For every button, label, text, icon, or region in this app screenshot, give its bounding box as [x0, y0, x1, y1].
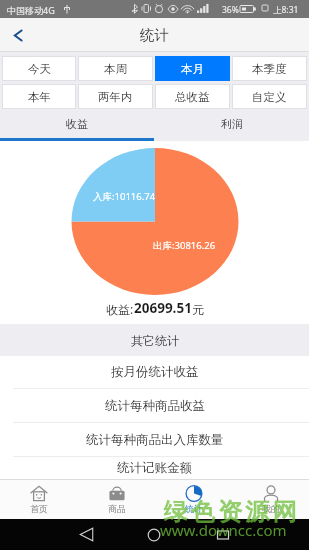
button[interactable]: Back: [69, 522, 103, 547]
staticText: www.downcc.com: [160, 520, 287, 540]
staticText: 36%: [222, 4, 239, 16]
staticText: 自定义: [252, 90, 287, 104]
staticText: 利润: [221, 117, 243, 131]
button[interactable]: 利润: [154, 110, 309, 138]
button[interactable]: 统计: [155, 480, 232, 519]
staticText: 本季度: [252, 62, 287, 76]
staticText: 两年内: [98, 90, 133, 104]
button[interactable]: 本年: [2, 84, 76, 109]
button[interactable]: 两年内: [78, 84, 153, 109]
button[interactable]: 统计每种商品收益: [0, 389, 309, 422]
staticText: 其它统计: [131, 333, 179, 348]
staticText: 中国移动4G: [7, 4, 55, 16]
staticText: 统计: [185, 503, 203, 514]
button[interactable]: 总收益: [155, 84, 230, 109]
staticText: 统计记账金额: [117, 460, 192, 476]
staticText: 元: [192, 302, 204, 317]
staticText: 商品: [108, 503, 126, 514]
button[interactable]: 本月: [155, 56, 230, 81]
button[interactable]: 统计每种商品出入库数量: [0, 423, 309, 456]
staticText: 20699.51: [134, 299, 192, 317]
staticText: 首页: [30, 503, 48, 514]
staticText: 出库:30816.26: [153, 239, 216, 252]
staticText: 统计每种商品出入库数量: [86, 432, 224, 448]
staticText: 收益:: [106, 301, 134, 317]
button[interactable]: 我的: [232, 480, 309, 519]
button[interactable]: Recents: [206, 522, 240, 547]
staticText: 总收益: [175, 90, 210, 104]
button[interactable]: 自定义: [232, 84, 307, 109]
button[interactable]: 首页: [0, 480, 78, 519]
button[interactable]: 本季度: [232, 56, 307, 81]
staticText: 我的: [262, 503, 280, 514]
staticText: 本月: [181, 62, 204, 76]
button[interactable]: 商品: [78, 480, 155, 519]
staticText: 入库:10116.74: [93, 190, 156, 203]
button[interactable]: 统计记账金额: [0, 457, 309, 479]
button[interactable]: 收益: [0, 110, 154, 138]
button[interactable]: 今天: [2, 56, 76, 81]
button[interactable]: 本周: [78, 56, 153, 81]
staticText: 统计每种商品收益: [105, 398, 205, 414]
staticText: 本周: [104, 62, 127, 76]
staticText: 绿色资源网: [162, 497, 298, 527]
staticText: 上8:31: [273, 4, 299, 16]
staticText: 今天: [28, 62, 51, 76]
button[interactable]: 按月份统计收益: [0, 356, 309, 388]
staticText: 本年: [28, 90, 51, 104]
button[interactable]: Home: [137, 522, 171, 547]
button[interactable]: Back: [1, 18, 35, 52]
staticText: 按月份统计收益: [111, 364, 199, 380]
staticText: 收益: [66, 117, 88, 131]
staticText: 统计: [140, 26, 169, 44]
